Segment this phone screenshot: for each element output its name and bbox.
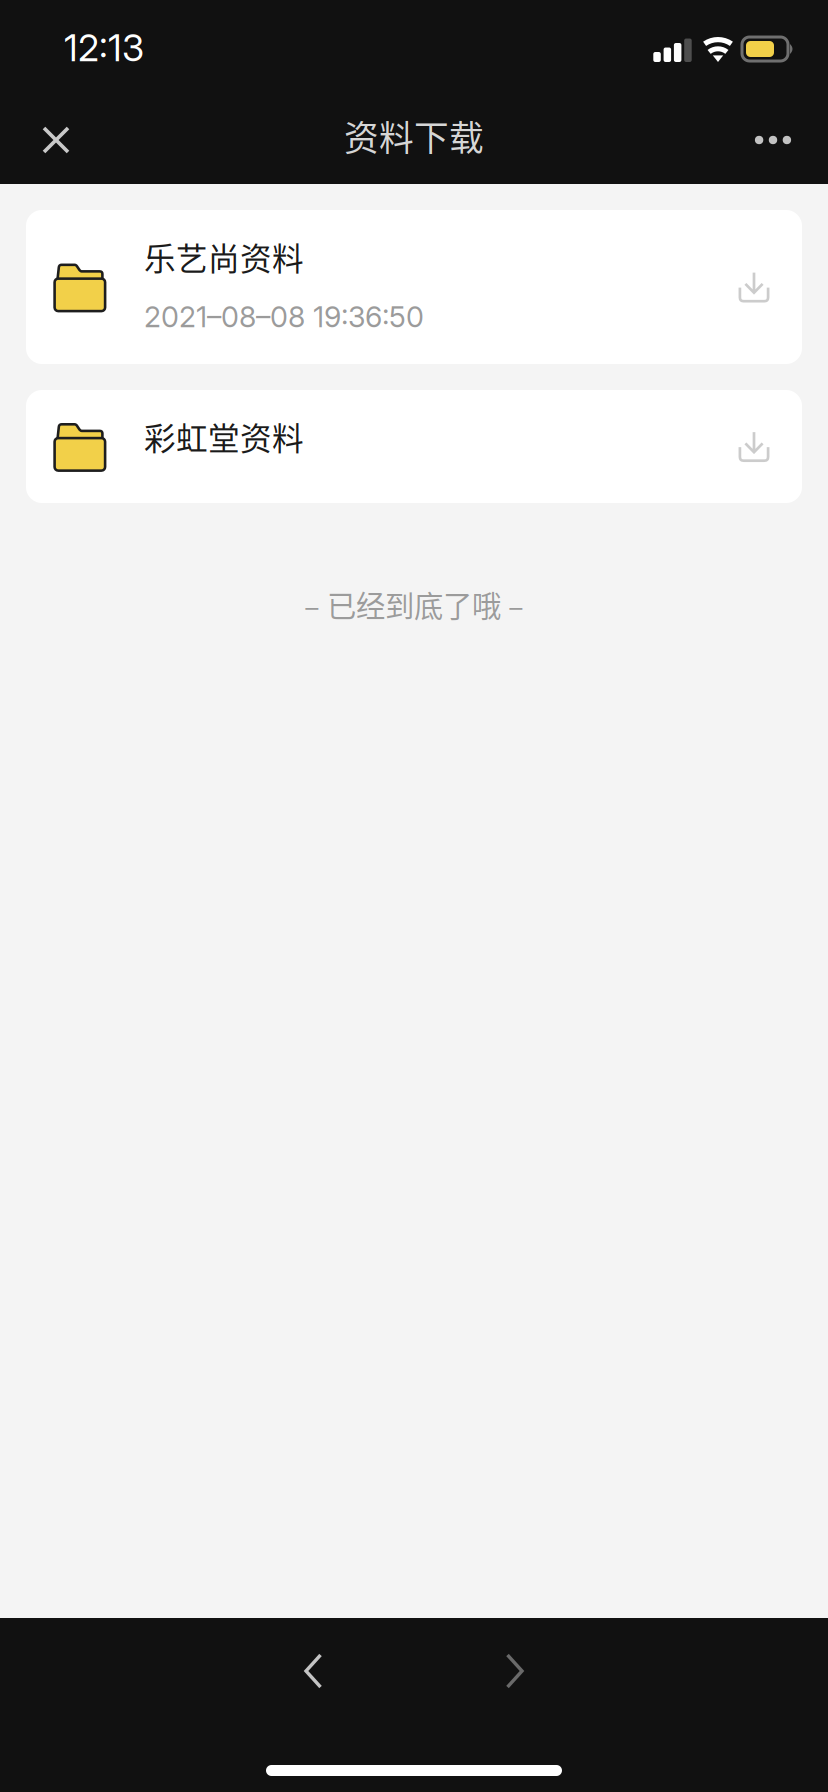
button[interactable]: More options <box>728 96 818 184</box>
staticText: 彩虹堂资料 <box>144 414 304 459</box>
button[interactable]: Close <box>13 96 99 184</box>
button[interactable]: Download 彩虹堂资料 <box>714 406 794 486</box>
button[interactable]: 乐艺尚资料 <box>26 210 802 364</box>
staticText: – 已经到底了哦 – <box>304 583 524 625</box>
staticText: 乐艺尚资料 <box>144 234 304 280</box>
button[interactable]: Back <box>263 1635 363 1707</box>
button[interactable]: Forward <box>464 1635 564 1707</box>
staticText: 12:13 <box>64 26 144 70</box>
button[interactable]: Download 乐艺尚资料 <box>714 247 794 327</box>
button[interactable]: 彩虹堂资料 <box>26 390 802 503</box>
staticText: 2021–08–08 19:36:50 <box>144 299 424 334</box>
staticText: 资料下载 <box>344 111 484 161</box>
